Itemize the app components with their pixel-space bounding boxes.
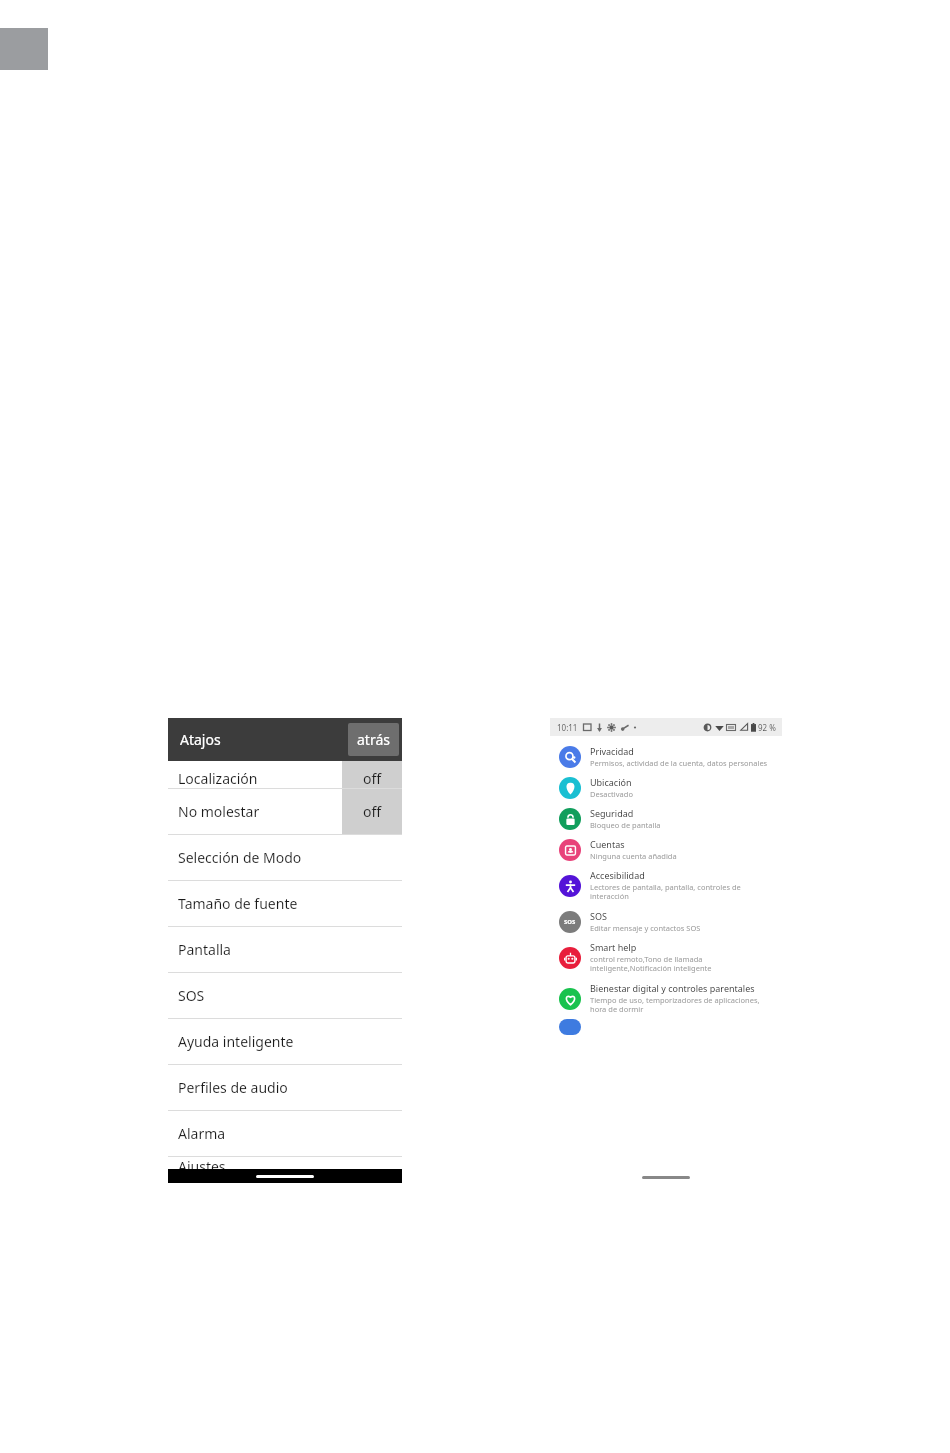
button[interactable]: Privacidad [550,741,782,772]
staticText: Desactivado [590,789,633,799]
staticText: Ayuda inteligente [178,1032,294,1051]
button[interactable]: SOS [550,906,782,937]
staticText: Atajos [180,730,348,749]
staticText: Tiempo de uso, temporizadores de aplicac… [590,995,774,1015]
staticText: Ubicación [590,776,632,788]
staticText: Seguridad [590,807,634,819]
staticText: SOS [590,910,607,922]
staticText: Alarma [178,1124,226,1143]
button[interactable]: Perfiles de audio [168,1065,402,1110]
staticText: 92 % [758,722,776,733]
button[interactable]: Pantalla [168,927,402,972]
staticText: Permisos, actividad de la cuenta, datos … [590,758,768,768]
button[interactable]: Localización [168,761,402,788]
staticText: Editar mensaje y contactos SOS [590,923,701,933]
button[interactable]: No molestar [168,789,402,834]
staticText: off [363,769,382,788]
button[interactable]: Selección de Modo [168,835,402,880]
button[interactable]: Cuentas [550,834,782,865]
staticText: Selección de Modo [178,848,302,867]
button[interactable]: SOS [168,973,402,1018]
button[interactable]: Alarma [168,1111,402,1156]
button[interactable]: Bienestar digital y controles parentales [550,978,782,1019]
button[interactable]: Seguridad [550,803,782,834]
staticText: Ninguna cuenta añadida [590,851,677,861]
staticText: Localización [178,769,258,788]
button[interactable]: Ajustes [168,1157,402,1169]
staticText: Cuentas [590,838,625,850]
staticText: Bienestar digital y controles parentales [590,982,755,994]
staticText: Perfiles de audio [178,1078,288,1097]
staticText: SOS [178,986,205,1005]
staticText: 10:11 [557,722,578,733]
staticText: off [363,802,382,821]
staticText: atrás [357,730,390,749]
button[interactable]: Ayuda inteligente [168,1019,402,1064]
button[interactable]: Accesibilidad [550,865,782,906]
button[interactable]: Smart help [550,937,782,978]
staticText: Tamaño de fuente [178,894,298,913]
staticText: control remoto,Tono de llamada inteligen… [590,954,774,974]
staticText: Privacidad [590,745,634,757]
button[interactable]: atrás [348,723,399,756]
staticText: Pantalla [178,940,231,959]
staticText: Accesibilidad [590,869,645,881]
staticText: No molestar [178,802,342,821]
staticText: Smart help [590,941,637,953]
staticText: Lectores de pantalla, pantalla, controle… [590,882,774,902]
staticText: Ajustes [178,1157,226,1169]
button[interactable] [550,1019,782,1035]
staticText: SOS [564,918,576,926]
button[interactable]: Ubicación [550,772,782,803]
staticText: Bloqueo de pantalla [590,820,661,830]
button[interactable]: Tamaño de fuente [168,881,402,926]
